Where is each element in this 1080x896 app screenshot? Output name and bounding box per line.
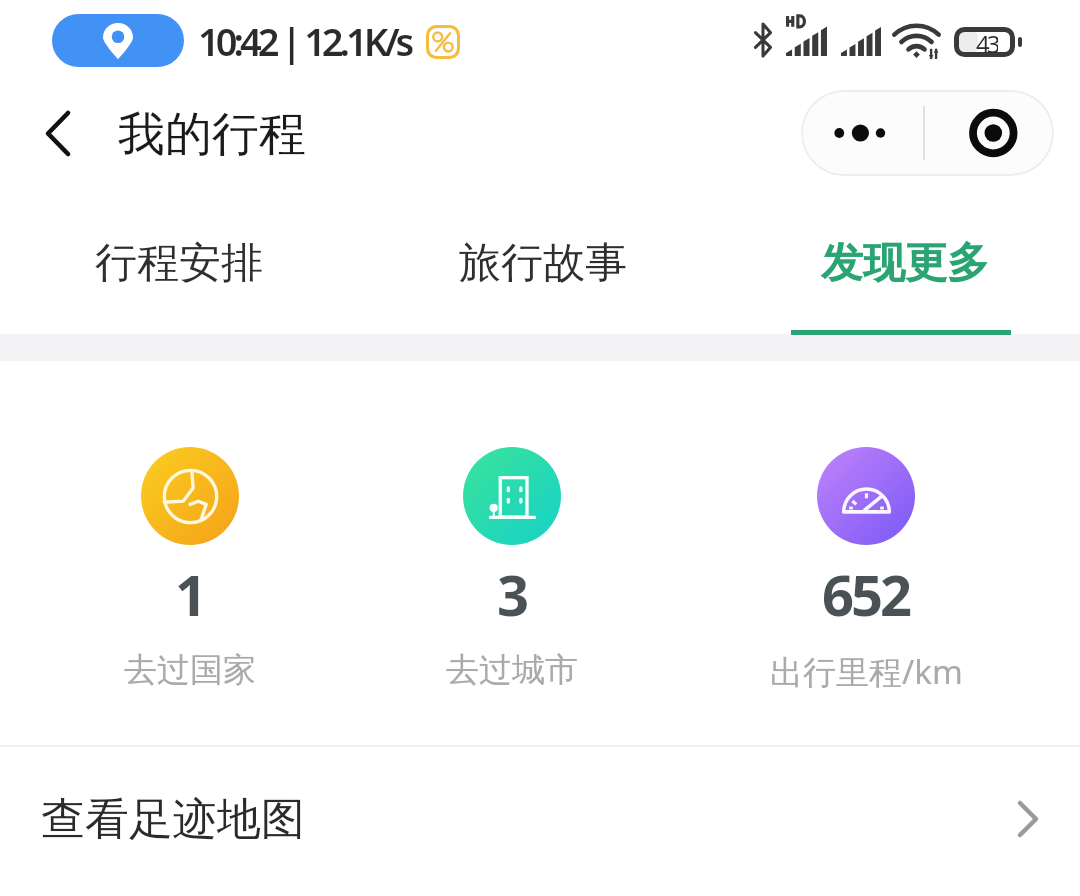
button[interactable]: 查看足迹地图 [0, 747, 1080, 896]
staticText: 去过城市 [446, 649, 578, 691]
button[interactable]: Back [22, 97, 94, 169]
staticText: 发现更多 [821, 237, 989, 290]
button[interactable]: 3 [372, 362, 652, 745]
staticText: 652 [822, 556, 910, 632]
button[interactable]: 发现更多 [727, 190, 1080, 335]
button[interactable]: 行程安排 [0, 190, 360, 335]
staticText: 旅行故事 [459, 237, 627, 290]
staticText: 1 [175, 556, 205, 632]
staticText: 我的行程 [118, 105, 306, 164]
button[interactable]: 旅行故事 [365, 190, 722, 335]
button[interactable]: Close mini program [928, 90, 1054, 176]
staticText: 10:42 | 12.1K/s [198, 15, 411, 67]
staticText: 出行里程/km [770, 649, 963, 694]
staticText: 43 [976, 27, 998, 57]
staticText: 去过国家 [124, 649, 256, 691]
staticText: 3 [497, 556, 527, 632]
staticText: 行程安排 [95, 237, 263, 290]
button[interactable]: 1 [50, 362, 330, 745]
button[interactable]: More options [801, 90, 927, 176]
button[interactable]: 652 [726, 362, 1006, 745]
staticText: 查看足迹地图 [41, 792, 305, 847]
